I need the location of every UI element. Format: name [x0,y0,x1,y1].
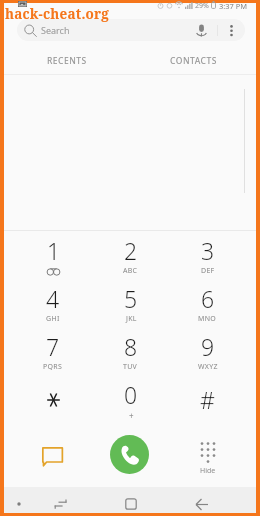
button[interactable]: 3 [169,235,246,283]
staticText: 5 [124,283,138,314]
staticText: 3:37 PM [219,1,248,9]
staticText: GHI [46,314,60,324]
button[interactable]: 1 [14,235,92,283]
button[interactable]: 9 [169,331,246,379]
staticText: WXYZ [198,362,218,372]
button[interactable]: Recent apps [45,495,75,513]
button[interactable]: Search [17,19,245,41]
staticText: 4 [46,283,60,314]
staticText: 7 [46,331,60,362]
staticText: 0 [124,379,138,410]
other: Search [24,24,37,37]
button[interactable]: 0 [92,379,169,427]
staticText: CONTACTS [170,55,217,67]
staticText: 1 [47,235,61,266]
staticText: + [129,410,134,421]
staticText: MNO [198,314,217,324]
button[interactable]: CONTACTS [130,48,256,74]
staticText: Search [41,24,70,36]
staticText: RECENTS [47,55,87,67]
staticText: 8 [124,331,138,362]
button[interactable]: 7 [14,331,92,379]
button[interactable]: # [169,379,246,427]
button[interactable]: Assistant [7,495,31,513]
staticText: 9 [201,331,215,362]
staticText: # [200,384,215,415]
button[interactable]: 6 [169,283,246,331]
button[interactable]: 4 [14,283,92,331]
staticText: 6 [201,283,215,314]
button[interactable]: Back [187,495,217,513]
staticText: ABC [123,266,138,276]
button[interactable]: Hide [188,436,228,482]
button[interactable]: Call [110,435,149,474]
staticText: JKL [126,314,137,324]
staticText: 2 [124,235,138,266]
staticText: 3 [201,235,215,266]
button[interactable]: 5 [92,283,169,331]
staticText: Hide [200,466,216,476]
staticText: hack-cheat.org [5,5,110,23]
button[interactable]: More options [224,19,239,41]
button[interactable]: Message [30,434,74,478]
button[interactable]: Voice search [193,19,210,41]
staticText: DEF [201,266,215,276]
staticText: 29% [195,1,209,9]
button[interactable]: RECENTS [4,48,130,74]
button[interactable] [14,379,92,427]
button[interactable]: 8 [92,331,169,379]
button[interactable]: Home [116,495,146,513]
staticText: PQRS [43,362,63,372]
button[interactable]: 2 [92,235,169,283]
staticText: TUV [123,362,138,372]
